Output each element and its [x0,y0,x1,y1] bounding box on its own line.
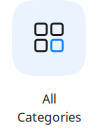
button[interactable]: All Categories [12,0,86,76]
staticText: All Categories [17,90,81,125]
